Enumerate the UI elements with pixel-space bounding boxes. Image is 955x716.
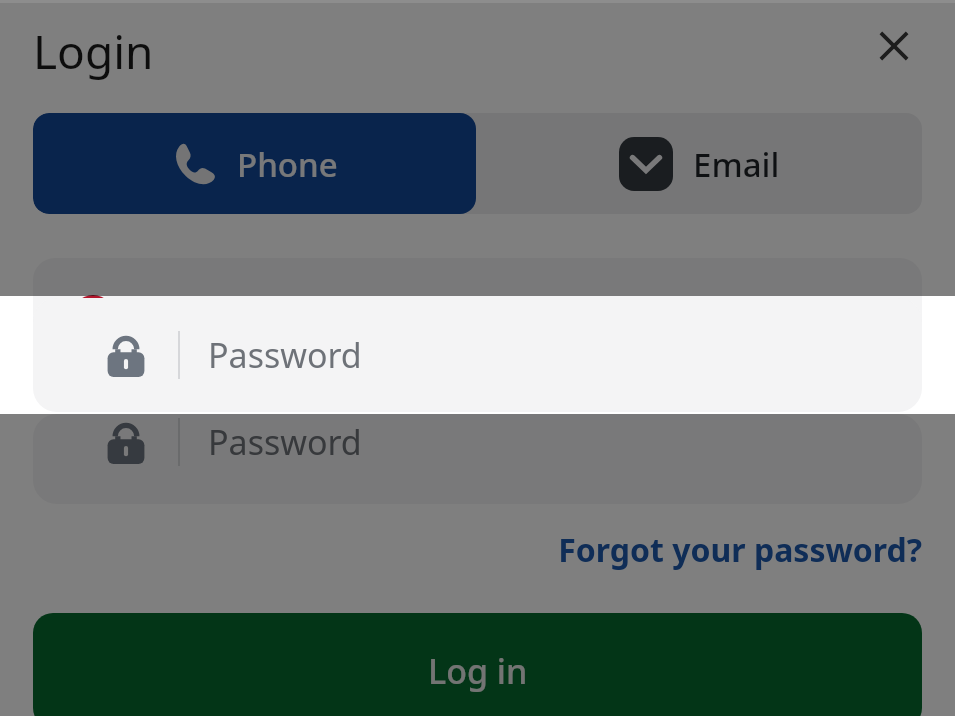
staticText: Phone [237,142,338,187]
button[interactable]: Close [862,14,926,78]
button[interactable] [33,258,922,376]
button[interactable]: Password [33,298,922,412]
staticText: Forgot your password? [558,528,922,572]
button[interactable] [0,0,955,296]
button[interactable]: Email [476,113,922,214]
button[interactable]: Phone [33,113,476,214]
staticText: Email [693,142,780,187]
button[interactable] [0,414,955,716]
staticText: Log in [428,648,528,694]
staticText: Password [208,419,362,465]
staticText: Password [208,332,362,378]
button[interactable]: Forgot your password? [500,520,922,580]
button[interactable]: Log in [33,613,922,716]
staticText: Login [33,20,154,83]
button[interactable]: Password [33,414,922,504]
